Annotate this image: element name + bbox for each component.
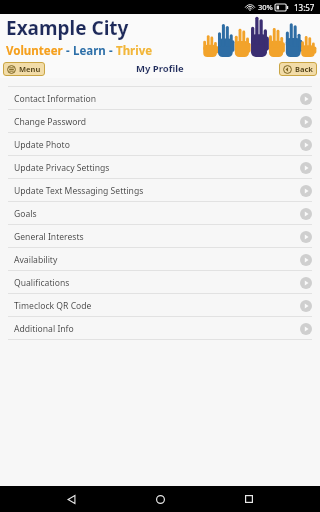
button[interactable]: Update Privacy Settings [0,156,320,179]
staticText: Availability [14,254,58,266]
staticText: Back [295,64,313,74]
staticText: Timeclock QR Code [14,300,92,312]
staticText: - [106,43,116,59]
button[interactable]: My Profile [136,62,184,75]
button[interactable]: Back [58,486,84,512]
button[interactable]: Change Password [0,110,320,133]
button[interactable]: General Interests [0,225,320,248]
button[interactable]: Back [279,62,317,76]
staticText: Change Password [14,116,87,128]
button[interactable]: Timeclock QR Code [0,294,320,317]
staticText: - [63,43,73,59]
staticText: My Profile [136,62,184,75]
staticText: Goals [14,208,37,220]
staticText: Additional Info [14,323,74,335]
staticText: 30% [258,2,273,12]
staticText: Menu [19,64,41,74]
button[interactable]: Update Text Messaging Settings [0,179,320,202]
staticText: Update Text Messaging Settings [14,185,144,197]
button[interactable]: Home [147,486,173,512]
button[interactable]: Contact Information [0,87,320,110]
staticText: Qualifications [14,277,70,289]
button[interactable]: Menu [3,62,45,76]
button[interactable]: Goals [0,202,320,225]
button[interactable]: Additional Info [0,317,320,340]
staticText: Volunteer [6,43,63,59]
button[interactable]: Recent apps [236,486,262,512]
staticText: Learn [73,43,106,59]
staticText: Example City [6,15,129,41]
button[interactable]: Qualifications [0,271,320,294]
staticText: General Interests [14,231,84,243]
staticText: Thrive [116,43,153,59]
staticText: 13:57 [294,2,315,13]
staticText: Update Photo [14,139,70,151]
staticText: Update Privacy Settings [14,162,110,174]
button[interactable]: Update Photo [0,133,320,156]
button[interactable]: Availability [0,248,320,271]
staticText: Contact Information [14,93,96,105]
